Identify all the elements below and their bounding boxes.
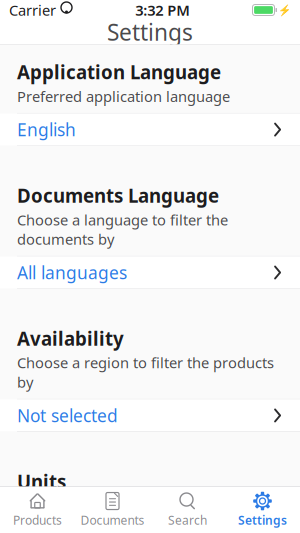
staticText: 3:32 PM	[135, 0, 190, 20]
staticText: Search	[168, 512, 207, 528]
staticText: English	[17, 118, 76, 141]
staticText: Choose units	[17, 496, 106, 515]
staticText: Documents	[80, 512, 144, 528]
staticText: Not selected	[17, 404, 118, 427]
button[interactable]: Documents	[75, 487, 150, 533]
button[interactable]: English	[0, 114, 300, 146]
staticText: All languages	[17, 261, 127, 284]
staticText: Application Language	[17, 60, 221, 84]
button[interactable]: Search	[150, 487, 225, 533]
staticText: Settings	[107, 17, 193, 47]
staticText: Products	[13, 512, 62, 528]
staticText: Availability	[17, 326, 124, 351]
staticText: Settings	[238, 512, 287, 528]
staticText: Documents Language	[17, 183, 219, 208]
button[interactable]: Metric	[0, 523, 300, 533]
staticText: Carrier	[9, 0, 56, 20]
staticText: Choose a region to filter the products b…	[17, 353, 274, 392]
staticText: Preferred application language	[17, 86, 230, 106]
button[interactable]: All languages	[0, 256, 300, 288]
staticText: ⚡	[278, 4, 291, 16]
staticText: Units	[17, 469, 66, 494]
button[interactable]: Not selected	[0, 399, 300, 431]
button[interactable]: Settings	[225, 487, 300, 533]
button[interactable]: Products	[0, 487, 75, 533]
staticText: Choose a language to filter the document…	[17, 210, 228, 249]
